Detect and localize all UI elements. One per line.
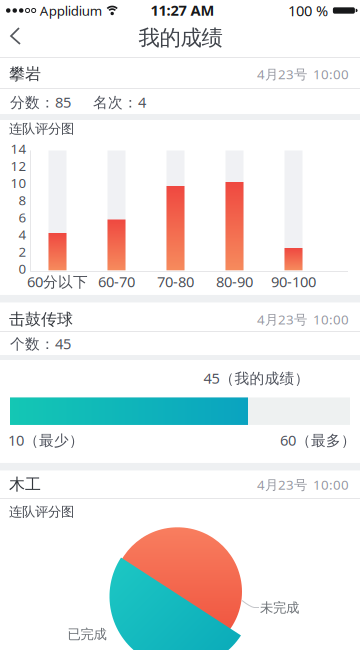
staticText: 11:27 AM [150,0,214,20]
staticText: 10 [10,174,26,192]
staticText: 12 [10,157,26,175]
staticText: 60分以下 [27,272,88,291]
staticText: 60-70 [98,272,135,291]
staticText: 0 [18,260,26,277]
staticText: 10（最少） [8,430,84,450]
button[interactable]: Back [0,17,30,54]
staticText: 100 % [288,1,328,20]
staticText: 80-90 [216,272,253,291]
staticText: 攀岩 [9,64,41,84]
staticText: 14 [10,140,26,157]
staticText: 4月23号 10:00 [257,476,349,493]
staticText: 8 [18,191,26,209]
staticText: Applidium [40,2,102,19]
staticText: 4 [18,225,26,243]
staticText: 个数：45 [10,334,71,353]
staticText: 45（我的成绩） [203,368,309,388]
staticText: 60（最多） [280,430,356,450]
staticText: 连队评分图 [9,120,74,137]
staticText: 2 [18,243,26,260]
staticText: 击鼓传球 [9,309,73,329]
staticText: 6 [18,208,26,226]
staticText: 名次：4 [93,92,146,112]
staticText: 4月23号 10:00 [257,65,349,83]
staticText: 90-100 [271,272,316,291]
staticText: 分数：85 [10,92,71,112]
staticText: 未完成 [260,600,299,616]
staticText: 连队评分图 [9,504,74,520]
staticText: 4月23号 10:00 [257,310,349,328]
staticText: 我的成绩 [138,25,222,51]
staticText: 70-80 [157,272,194,291]
staticText: 已完成 [67,626,106,642]
staticText: 木工 [9,475,41,494]
